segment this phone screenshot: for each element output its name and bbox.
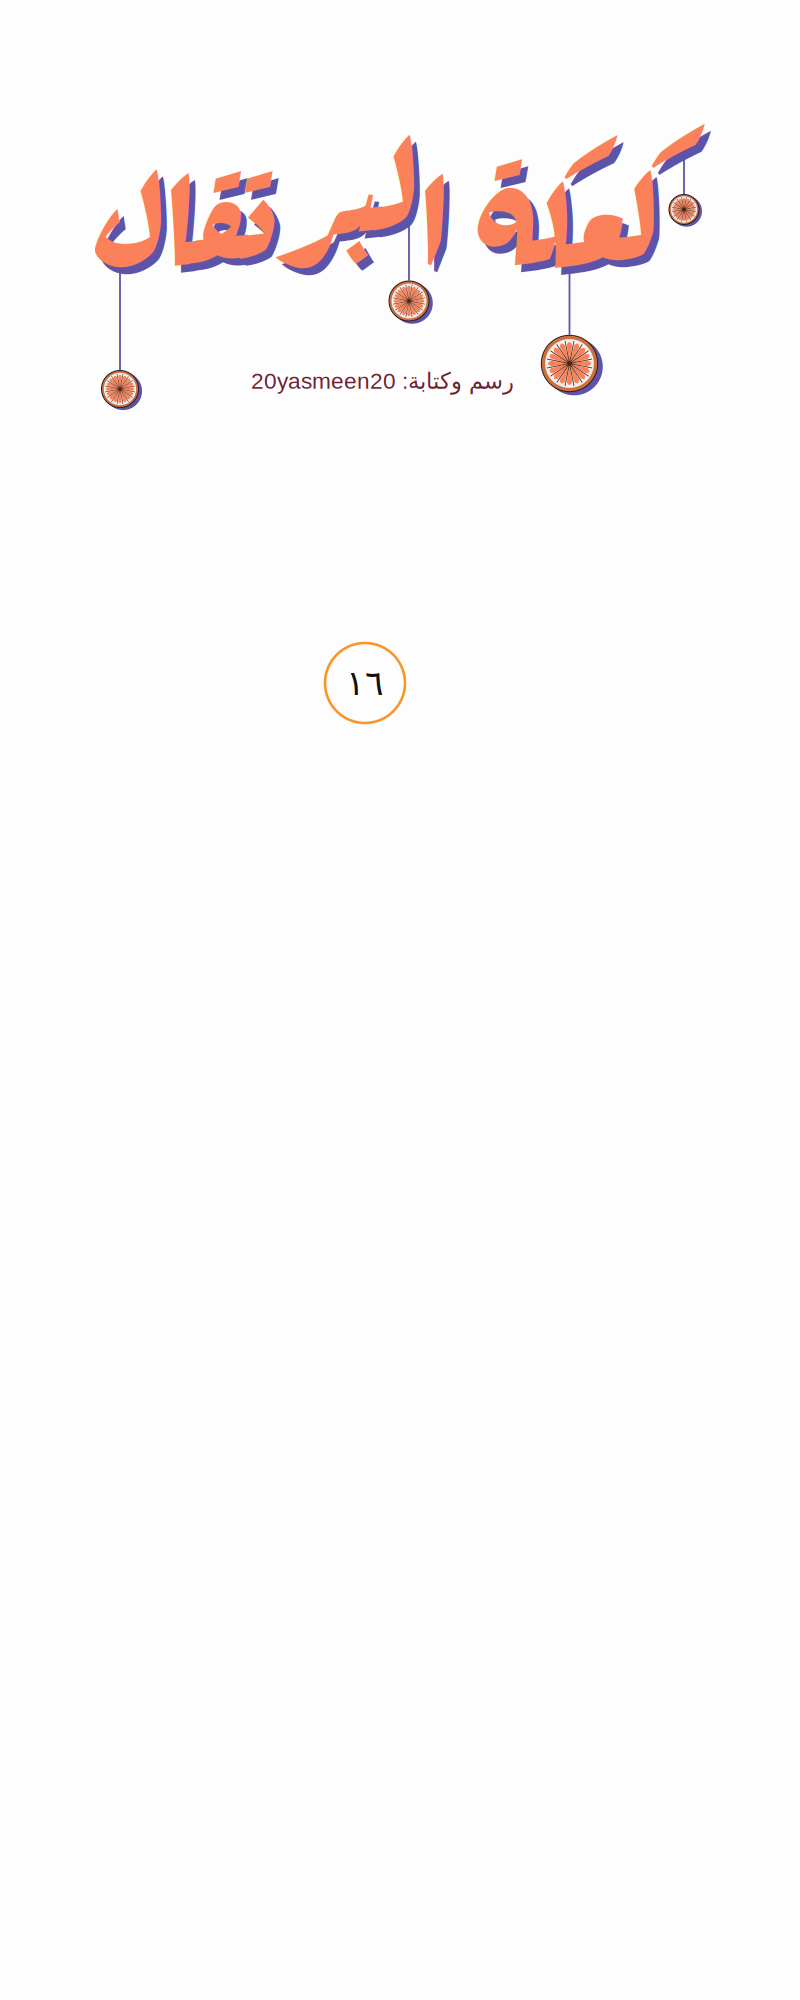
staticText: ١٦: [346, 663, 384, 703]
staticText: كعكة البرتقال: [98, 122, 688, 330]
staticText: رسم وكتابة: 20yasmeen20: [250, 368, 513, 394]
staticText: كعكة البرتقال: [92, 115, 682, 323]
button[interactable]: ١٦: [325, 643, 405, 723]
